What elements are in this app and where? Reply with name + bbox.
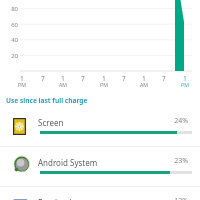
button[interactable]: Screen (0, 107, 200, 147)
staticText: PM (175, 81, 195, 88)
staticText: 7 (154, 74, 174, 83)
staticText: AM (53, 81, 73, 88)
staticText: 20 (0, 52, 18, 60)
other: Facebook (13, 198, 26, 200)
other: Android System (13, 158, 26, 175)
staticText: 23% (156, 156, 188, 166)
staticText: 1 (175, 74, 195, 83)
staticText: Screen (38, 117, 64, 128)
staticText: Facebook (38, 197, 74, 200)
other: Screen (13, 118, 26, 135)
button[interactable]: Android System (0, 147, 200, 187)
staticText: 7 (33, 74, 53, 83)
staticText: 1 (134, 74, 154, 83)
staticText: Use since last full charge (6, 96, 88, 105)
button[interactable]: Facebook (0, 187, 200, 200)
staticText: Android System (38, 157, 98, 168)
staticText: 1 (53, 74, 73, 83)
staticText: 40 (0, 36, 18, 44)
staticText: 80 (0, 5, 18, 13)
staticText: 12% (156, 196, 188, 200)
staticText: 7 (114, 74, 134, 83)
staticText: PM (12, 81, 32, 88)
staticText: 60 (0, 21, 18, 29)
staticText: AM (134, 81, 154, 88)
staticText: 7 (73, 74, 93, 83)
staticText: 1 (94, 74, 114, 83)
staticText: 24% (156, 116, 188, 126)
staticText: 1 (12, 74, 32, 83)
staticText: PM (94, 81, 114, 88)
